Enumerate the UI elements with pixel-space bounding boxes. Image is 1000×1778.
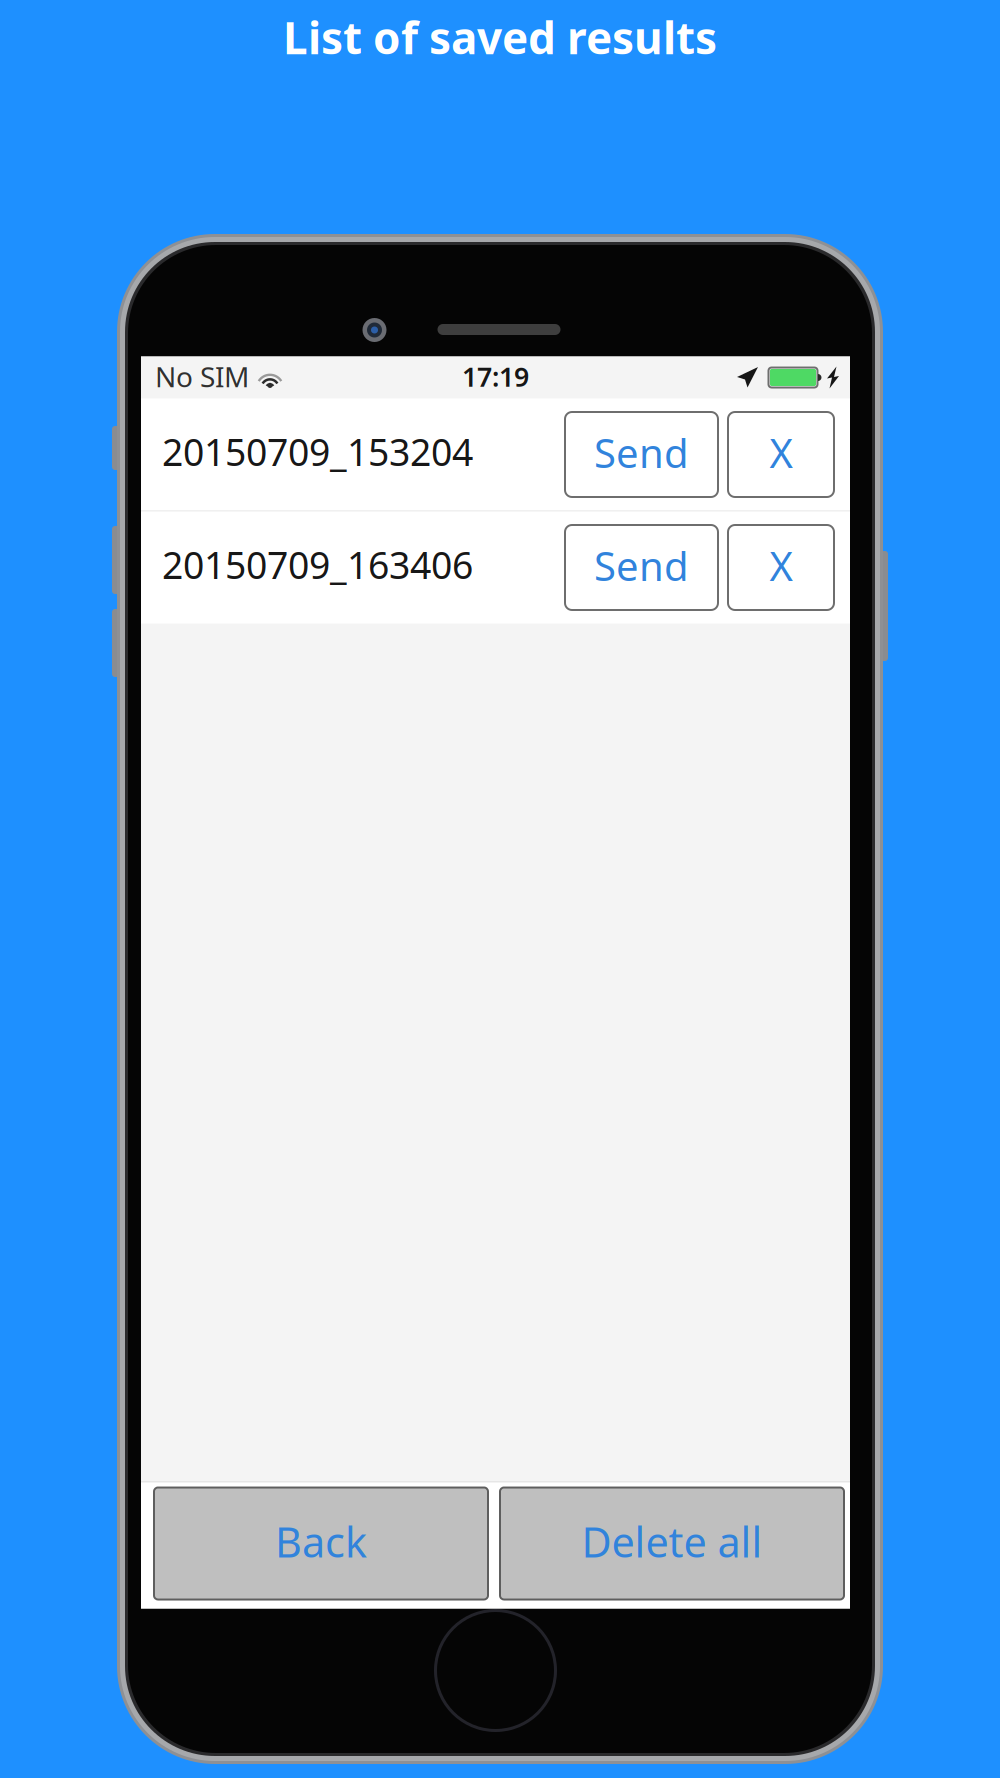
staticText: X [769, 539, 792, 592]
staticText: No SIM [155, 358, 249, 395]
button[interactable]: X [728, 525, 834, 610]
button[interactable]: Back [154, 1487, 488, 1599]
staticText: Send [594, 426, 689, 479]
staticText: 17:19 [462, 359, 529, 394]
staticText: Delete all [581, 1514, 762, 1569]
staticText: 20150709_163406 [162, 540, 473, 589]
button[interactable]: X [728, 412, 834, 497]
staticText: Send [594, 539, 689, 592]
staticText: Back [275, 1514, 367, 1569]
staticText: List of saved results [283, 8, 717, 66]
staticText: 20150709_153204 [162, 427, 473, 476]
button[interactable]: Delete all [500, 1487, 844, 1599]
button[interactable]: Send [565, 525, 718, 610]
button[interactable]: Send [565, 412, 718, 497]
staticText: X [769, 426, 792, 479]
